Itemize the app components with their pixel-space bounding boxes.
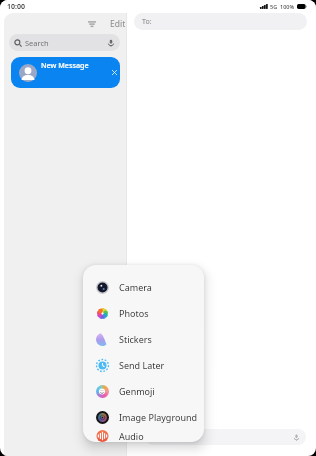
staticText: Stickers (119, 333, 152, 345)
staticText: Send Later (119, 359, 165, 371)
staticText: Photos (119, 307, 149, 319)
staticText: Image Playground (119, 411, 198, 423)
button[interactable]: Audio (83, 430, 204, 442)
button[interactable]: Camera (83, 274, 204, 300)
button[interactable]: To: (134, 13, 307, 30)
staticText: New Message (41, 60, 89, 70)
button[interactable]: Stickers (83, 326, 204, 352)
button[interactable]: New Message (11, 57, 120, 88)
button[interactable]: Genmoji (83, 378, 204, 404)
staticText: 100% (280, 3, 295, 10)
staticText: Search (25, 38, 49, 48)
staticText: 5G (270, 3, 278, 10)
staticText: To: (142, 17, 152, 27)
staticText: Genmoji (119, 385, 155, 397)
staticText: Camera (119, 281, 152, 293)
button[interactable]: Send Later (83, 352, 204, 378)
button[interactable]: Photos (83, 300, 204, 326)
button[interactable]: Edit (107, 13, 129, 34)
button[interactable] (145, 429, 306, 445)
button[interactable]: Filter (86, 13, 98, 34)
button[interactable]: Close (109, 67, 120, 78)
staticText: 10:00 (7, 2, 25, 12)
button[interactable]: Search (9, 34, 120, 51)
staticText: Audio (119, 430, 144, 442)
button[interactable]: Image Playground (83, 404, 204, 430)
staticText: Edit (110, 18, 126, 30)
